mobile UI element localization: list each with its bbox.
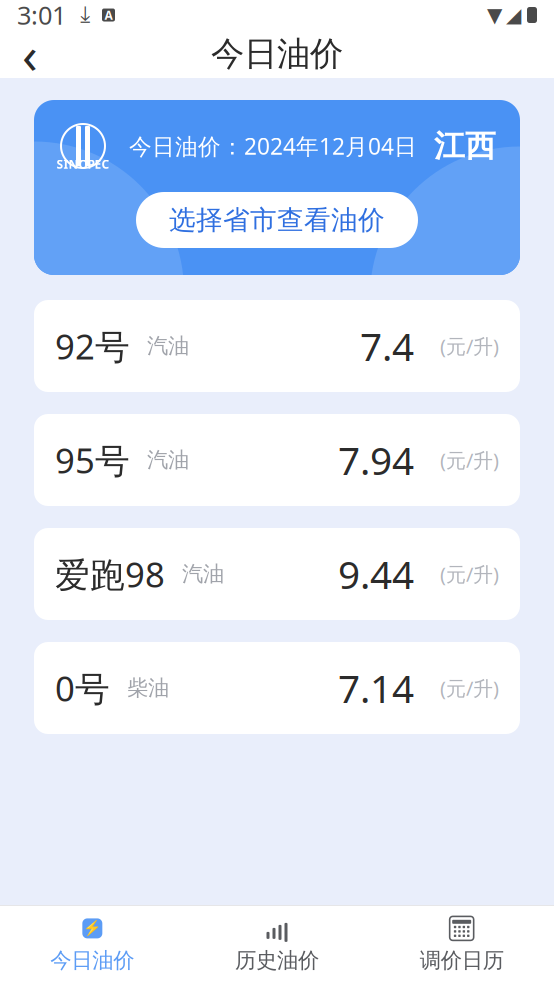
staticText: 历史油价 <box>235 947 319 974</box>
button[interactable]: 爱跑98 <box>34 528 520 620</box>
staticText: SINOPEC <box>56 156 109 172</box>
staticText: 调价日历 <box>420 947 504 974</box>
staticText: 汽油 <box>182 561 224 587</box>
button[interactable]: 调价日历 <box>369 906 554 984</box>
button[interactable]: 历史油价 <box>185 906 369 984</box>
staticText: ◢ <box>506 4 521 26</box>
staticText: 7.14 <box>338 662 414 714</box>
staticText: (元/升) <box>440 333 499 359</box>
staticText: 今日油价 <box>50 947 134 974</box>
staticText: ⚡ <box>83 920 101 937</box>
staticText: 7.4 <box>360 320 414 372</box>
button[interactable]: 92号 <box>34 300 520 392</box>
staticText: 0号 <box>55 665 110 711</box>
staticText: (元/升) <box>440 675 499 701</box>
staticText: 汽油 <box>147 333 189 359</box>
staticText: 汽油 <box>147 447 189 473</box>
staticText: (元/升) <box>440 561 499 587</box>
staticText: 今日油价 <box>211 33 343 74</box>
button[interactable]: 选择省市查看油价 <box>136 192 418 248</box>
staticText: 江西 <box>434 127 496 165</box>
staticText: ▼ <box>487 4 502 26</box>
staticText: 92号 <box>55 323 130 369</box>
staticText: 选择省市查看油价 <box>169 204 385 236</box>
staticText: 9.44 <box>338 548 414 600</box>
button[interactable]: 95号 <box>34 414 520 506</box>
staticText: 3:01 <box>17 0 66 32</box>
staticText: 爱跑98 <box>55 551 165 597</box>
staticText: 柴油 <box>127 675 169 701</box>
staticText: 今日油价：2024年12月04日 <box>129 131 417 161</box>
staticText: 95号 <box>55 437 130 483</box>
staticText: ‹ <box>22 20 38 88</box>
staticText: ⤓ <box>80 4 90 26</box>
staticText: 7.94 <box>338 434 414 486</box>
staticText: A <box>104 7 112 23</box>
button[interactable]: 0号 <box>34 642 520 734</box>
button[interactable]: 返回 <box>0 30 60 78</box>
button[interactable]: ⚡ <box>0 906 185 984</box>
staticText: (元/升) <box>440 447 499 473</box>
